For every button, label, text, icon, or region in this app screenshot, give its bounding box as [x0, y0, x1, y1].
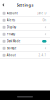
staticText: 2.4.1: [38, 53, 46, 57]
button[interactable]: Storage: [0, 45, 50, 52]
staticText: Alerts: [7, 18, 15, 22]
button[interactable]: Privacy: [0, 31, 50, 38]
staticText: Dark Mode: [7, 39, 21, 43]
staticText: About: [7, 53, 16, 57]
staticText: Account: [7, 11, 18, 15]
staticText: Jane D: [37, 11, 46, 15]
staticText: On: [42, 18, 46, 22]
button[interactable]: Account: [0, 10, 50, 17]
staticText: Privacy: [7, 32, 15, 36]
staticText: Storage: [7, 46, 17, 50]
button[interactable]: Dark Mode: [0, 38, 50, 45]
button[interactable]: Alerts: [0, 17, 50, 24]
staticText: Settings: [16, 2, 33, 8]
button[interactable]: Display: [0, 24, 50, 31]
button[interactable]: About: [0, 52, 50, 59]
button[interactable]: Back: [1, 1, 6, 9]
staticText: Display: [7, 25, 16, 29]
